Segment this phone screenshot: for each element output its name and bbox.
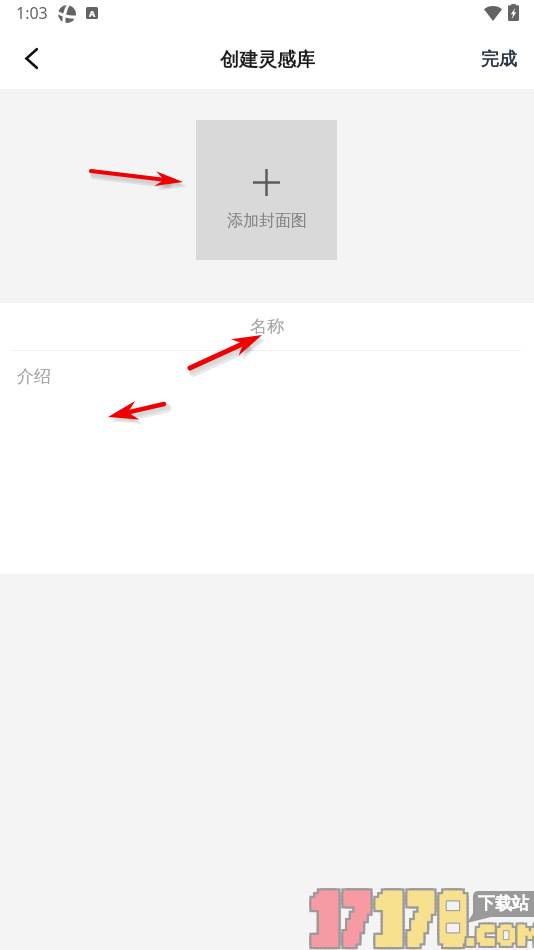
staticText: 名称 [250, 316, 284, 337]
staticText: 1:03 [16, 2, 48, 24]
button[interactable]: 介绍 [0, 351, 534, 574]
staticText: 添加封面图 [227, 211, 307, 231]
staticText: 完成 [481, 48, 517, 71]
button[interactable]: 完成 [461, 37, 534, 84]
button[interactable]: 添加封面图 [196, 120, 337, 260]
staticText: 创建灵感库 [220, 48, 315, 72]
button[interactable]: Back [8, 35, 54, 81]
staticText: A [89, 7, 96, 19]
button[interactable]: 名称 [0, 303, 534, 350]
staticText: 下载站 [478, 893, 529, 914]
staticText: 介绍 [17, 366, 51, 387]
